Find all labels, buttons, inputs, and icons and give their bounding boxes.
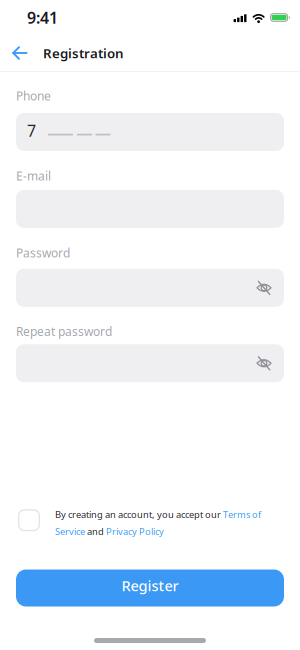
button[interactable]: Accept terms xyxy=(18,507,40,531)
staticText: 7 xyxy=(27,120,36,141)
staticText: Register xyxy=(121,576,178,595)
staticText: By creating an account, you accept our xyxy=(55,508,223,521)
staticText: Repeat password xyxy=(16,323,112,339)
staticText: Registration xyxy=(43,44,124,62)
staticText: Privacy Policy xyxy=(106,525,164,537)
button[interactable]: Repeat password xyxy=(16,344,284,382)
staticText: Phone xyxy=(16,88,51,104)
button[interactable]: Register xyxy=(16,569,284,606)
staticText: Password xyxy=(16,245,70,261)
staticText: 9:41 xyxy=(27,7,58,28)
button[interactable]: Privacy Policy xyxy=(106,525,164,537)
staticText: Service xyxy=(55,525,85,537)
staticText: E-mail xyxy=(16,168,51,184)
staticText: Terms of xyxy=(223,508,261,521)
button[interactable]: Service xyxy=(55,525,85,537)
button[interactable]: Phone xyxy=(16,113,284,151)
button[interactable]: Terms of xyxy=(223,508,261,521)
staticText: and xyxy=(85,525,106,537)
button[interactable]: Show password xyxy=(249,269,284,307)
button[interactable]: Show password xyxy=(249,344,284,382)
button[interactable]: Password xyxy=(16,269,284,307)
button[interactable]: Back xyxy=(0,35,43,71)
